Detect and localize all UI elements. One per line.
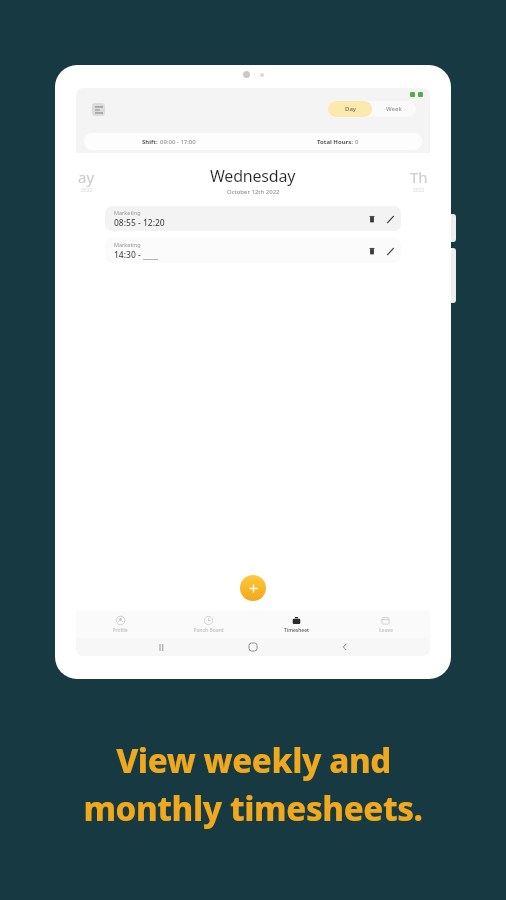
staticText: Marketing [114,241,141,248]
staticText: Shift: [142,138,160,146]
staticText: Timesheet [284,627,309,634]
staticText: Total Hours: [317,138,355,146]
button[interactable]: Marketing [105,238,401,263]
staticText: Leave [379,627,393,634]
staticText: 2022 [413,187,425,194]
staticText: Day [345,105,356,113]
button[interactable]: Home [246,640,260,654]
button[interactable]: Recents [154,640,168,654]
button[interactable]: Shift: [84,133,422,150]
button[interactable]: Day [328,101,372,117]
button[interactable]: Profile [76,611,164,638]
button[interactable]: Edit entry [383,242,397,260]
button[interactable]: Delete entry [363,242,381,260]
staticText: 14:30 - [114,249,143,261]
button[interactable]: Edit entry [383,210,397,228]
staticText: 0 [355,138,359,146]
staticText: ay [78,167,95,187]
staticText: 09:00 - 17:00 [160,138,196,146]
staticText: October 12th 2022 [227,188,280,196]
button[interactable]: Marketing [105,206,401,231]
staticText: Th [410,167,428,187]
button[interactable]: Week [372,101,416,117]
staticText: 08:55 - 12:20 [114,217,165,229]
staticText: Punch Board [193,627,224,634]
staticText: Wednesday [210,165,296,187]
button[interactable]: Delete entry [363,210,381,228]
button[interactable]: Back [338,640,352,654]
staticText: View weekly and [116,738,391,783]
staticText: monthly timesheets. [83,786,423,831]
button[interactable]: Punch Board [164,611,252,638]
button[interactable]: Menu [92,103,105,116]
staticText: Profile [112,627,128,634]
button[interactable]: Leave [341,611,430,638]
staticText: 2022 [81,187,93,194]
button[interactable]: Add entry [240,575,266,601]
staticText: Marketing [114,209,141,216]
staticText: Week [386,105,402,113]
button[interactable]: Timesheet [252,611,341,638]
